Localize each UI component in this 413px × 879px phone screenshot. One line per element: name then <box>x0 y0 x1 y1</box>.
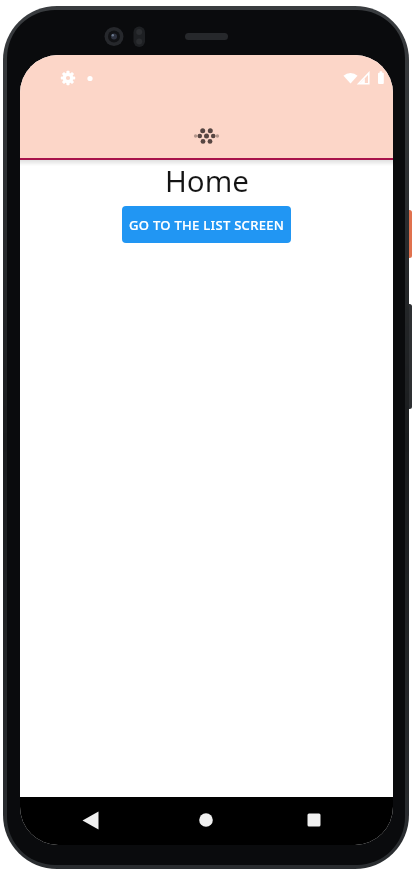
button[interactable] <box>186 800 226 840</box>
button[interactable] <box>294 800 334 840</box>
staticText: Home <box>165 160 249 200</box>
button[interactable]: GO TO THE LIST SCREEN <box>122 206 291 243</box>
staticText: GO TO THE LIST SCREEN <box>129 216 285 234</box>
button[interactable] <box>70 801 110 841</box>
